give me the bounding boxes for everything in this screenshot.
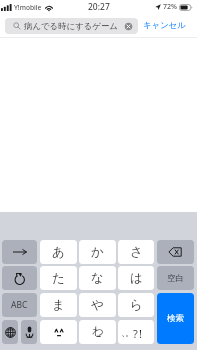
staticText: 検索 (167, 313, 184, 324)
button[interactable]: 、 (118, 320, 154, 344)
button[interactable]: ABC (2, 293, 37, 317)
button[interactable]: か (79, 240, 116, 264)
button[interactable]: Clear text (124, 22, 133, 31)
staticText: ! (139, 326, 142, 338)
button[interactable]: あ (40, 240, 77, 264)
staticText: ら (130, 297, 143, 313)
button[interactable]: Undo (2, 266, 37, 290)
staticText: さ (130, 244, 143, 260)
staticText: や (91, 297, 104, 313)
button[interactable]: Dictation (21, 320, 37, 344)
button[interactable]: Search (157, 293, 194, 344)
staticText: 、 (121, 327, 131, 339)
staticText: 72% (163, 2, 177, 12)
button[interactable]: Emoticons (40, 320, 77, 344)
staticText: ABC (11, 299, 28, 311)
button[interactable]: な (79, 266, 116, 290)
button[interactable]: ら (118, 293, 154, 317)
staticText: な (91, 270, 104, 286)
staticText: 空白 (167, 273, 184, 284)
staticText: キャンセル (143, 20, 186, 31)
staticText: Y!mobile (14, 3, 42, 12)
staticText: わ (92, 324, 104, 338)
staticText: 病んでる時にするゲーム (24, 21, 118, 32)
staticText: か (91, 244, 104, 260)
staticText: は (130, 270, 143, 286)
button[interactable]: ま (40, 293, 77, 317)
button[interactable]: や (79, 293, 116, 317)
button[interactable]: Backspace (157, 240, 194, 264)
button[interactable]: 空白 (157, 266, 194, 290)
staticText: あ (52, 244, 65, 260)
staticText: ま (52, 297, 65, 313)
staticText: ? (133, 326, 138, 338)
button[interactable]: た (40, 266, 77, 290)
button[interactable]: さ (118, 240, 154, 264)
button[interactable]: Switch keyboard (2, 320, 18, 344)
staticText: た (52, 270, 65, 286)
button[interactable]: 病んでる時にするゲーム (5, 18, 138, 34)
button[interactable]: Next candidate (2, 240, 37, 264)
button[interactable]: キャンセル (142, 17, 187, 34)
staticText: 。 (125, 327, 135, 339)
button[interactable]: は (118, 266, 154, 290)
button[interactable]: わ (79, 320, 116, 344)
staticText: 20:27 (88, 1, 110, 13)
